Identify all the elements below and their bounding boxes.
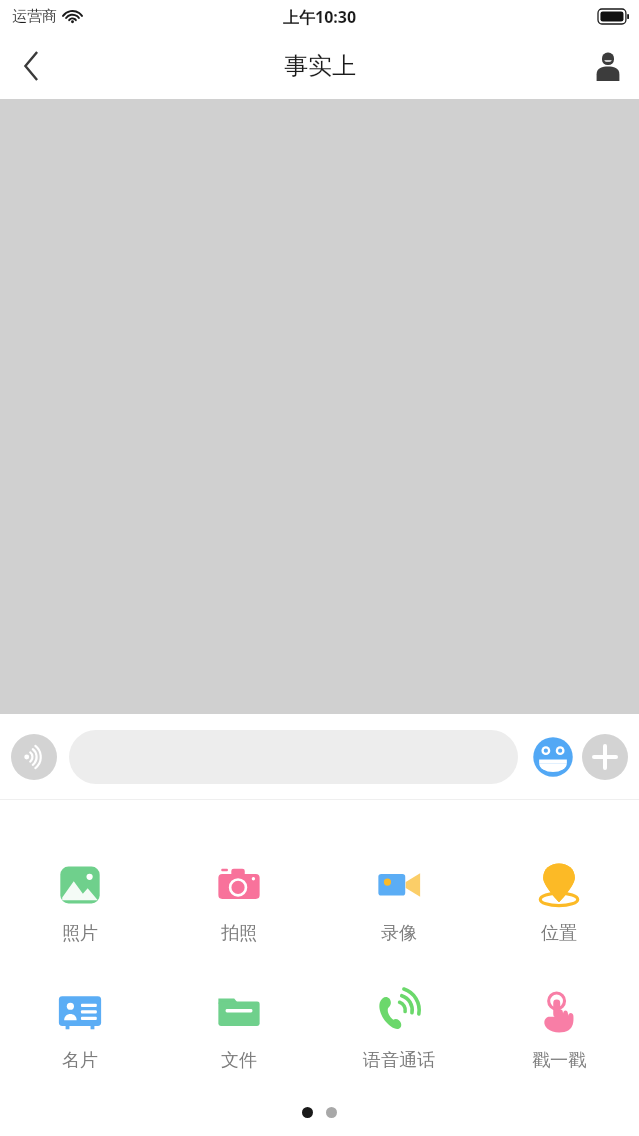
- staticText: 戳一戳: [532, 1049, 586, 1072]
- staticText: 语音通话: [363, 1049, 435, 1072]
- button[interactable]: Contact profile: [577, 35, 639, 97]
- staticText: 文件: [221, 1049, 257, 1072]
- staticText: 位置: [541, 922, 577, 945]
- button[interactable]: Voice message: [11, 734, 57, 780]
- button[interactable]: 位置: [479, 857, 639, 949]
- button[interactable]: 名片: [0, 984, 159, 1076]
- button[interactable]: Emoji: [530, 734, 576, 780]
- staticText: 事实上: [284, 51, 356, 81]
- button[interactable]: 拍照: [159, 857, 319, 949]
- button[interactable]: 戳一戳: [479, 984, 639, 1076]
- button[interactable]: 录像: [319, 857, 479, 949]
- button[interactable]: 文件: [159, 984, 319, 1076]
- button[interactable]: More attachments: [582, 734, 628, 780]
- button[interactable]: 照片: [0, 857, 159, 949]
- button[interactable]: 语音通话: [319, 984, 479, 1076]
- staticText: 拍照: [221, 922, 257, 945]
- staticText: 运营商: [12, 7, 57, 26]
- staticText: 照片: [62, 922, 98, 945]
- staticText: 上午10:30: [283, 6, 357, 28]
- staticText: 名片: [62, 1049, 98, 1072]
- staticText: 录像: [381, 922, 417, 945]
- button[interactable]: Back: [0, 35, 62, 97]
